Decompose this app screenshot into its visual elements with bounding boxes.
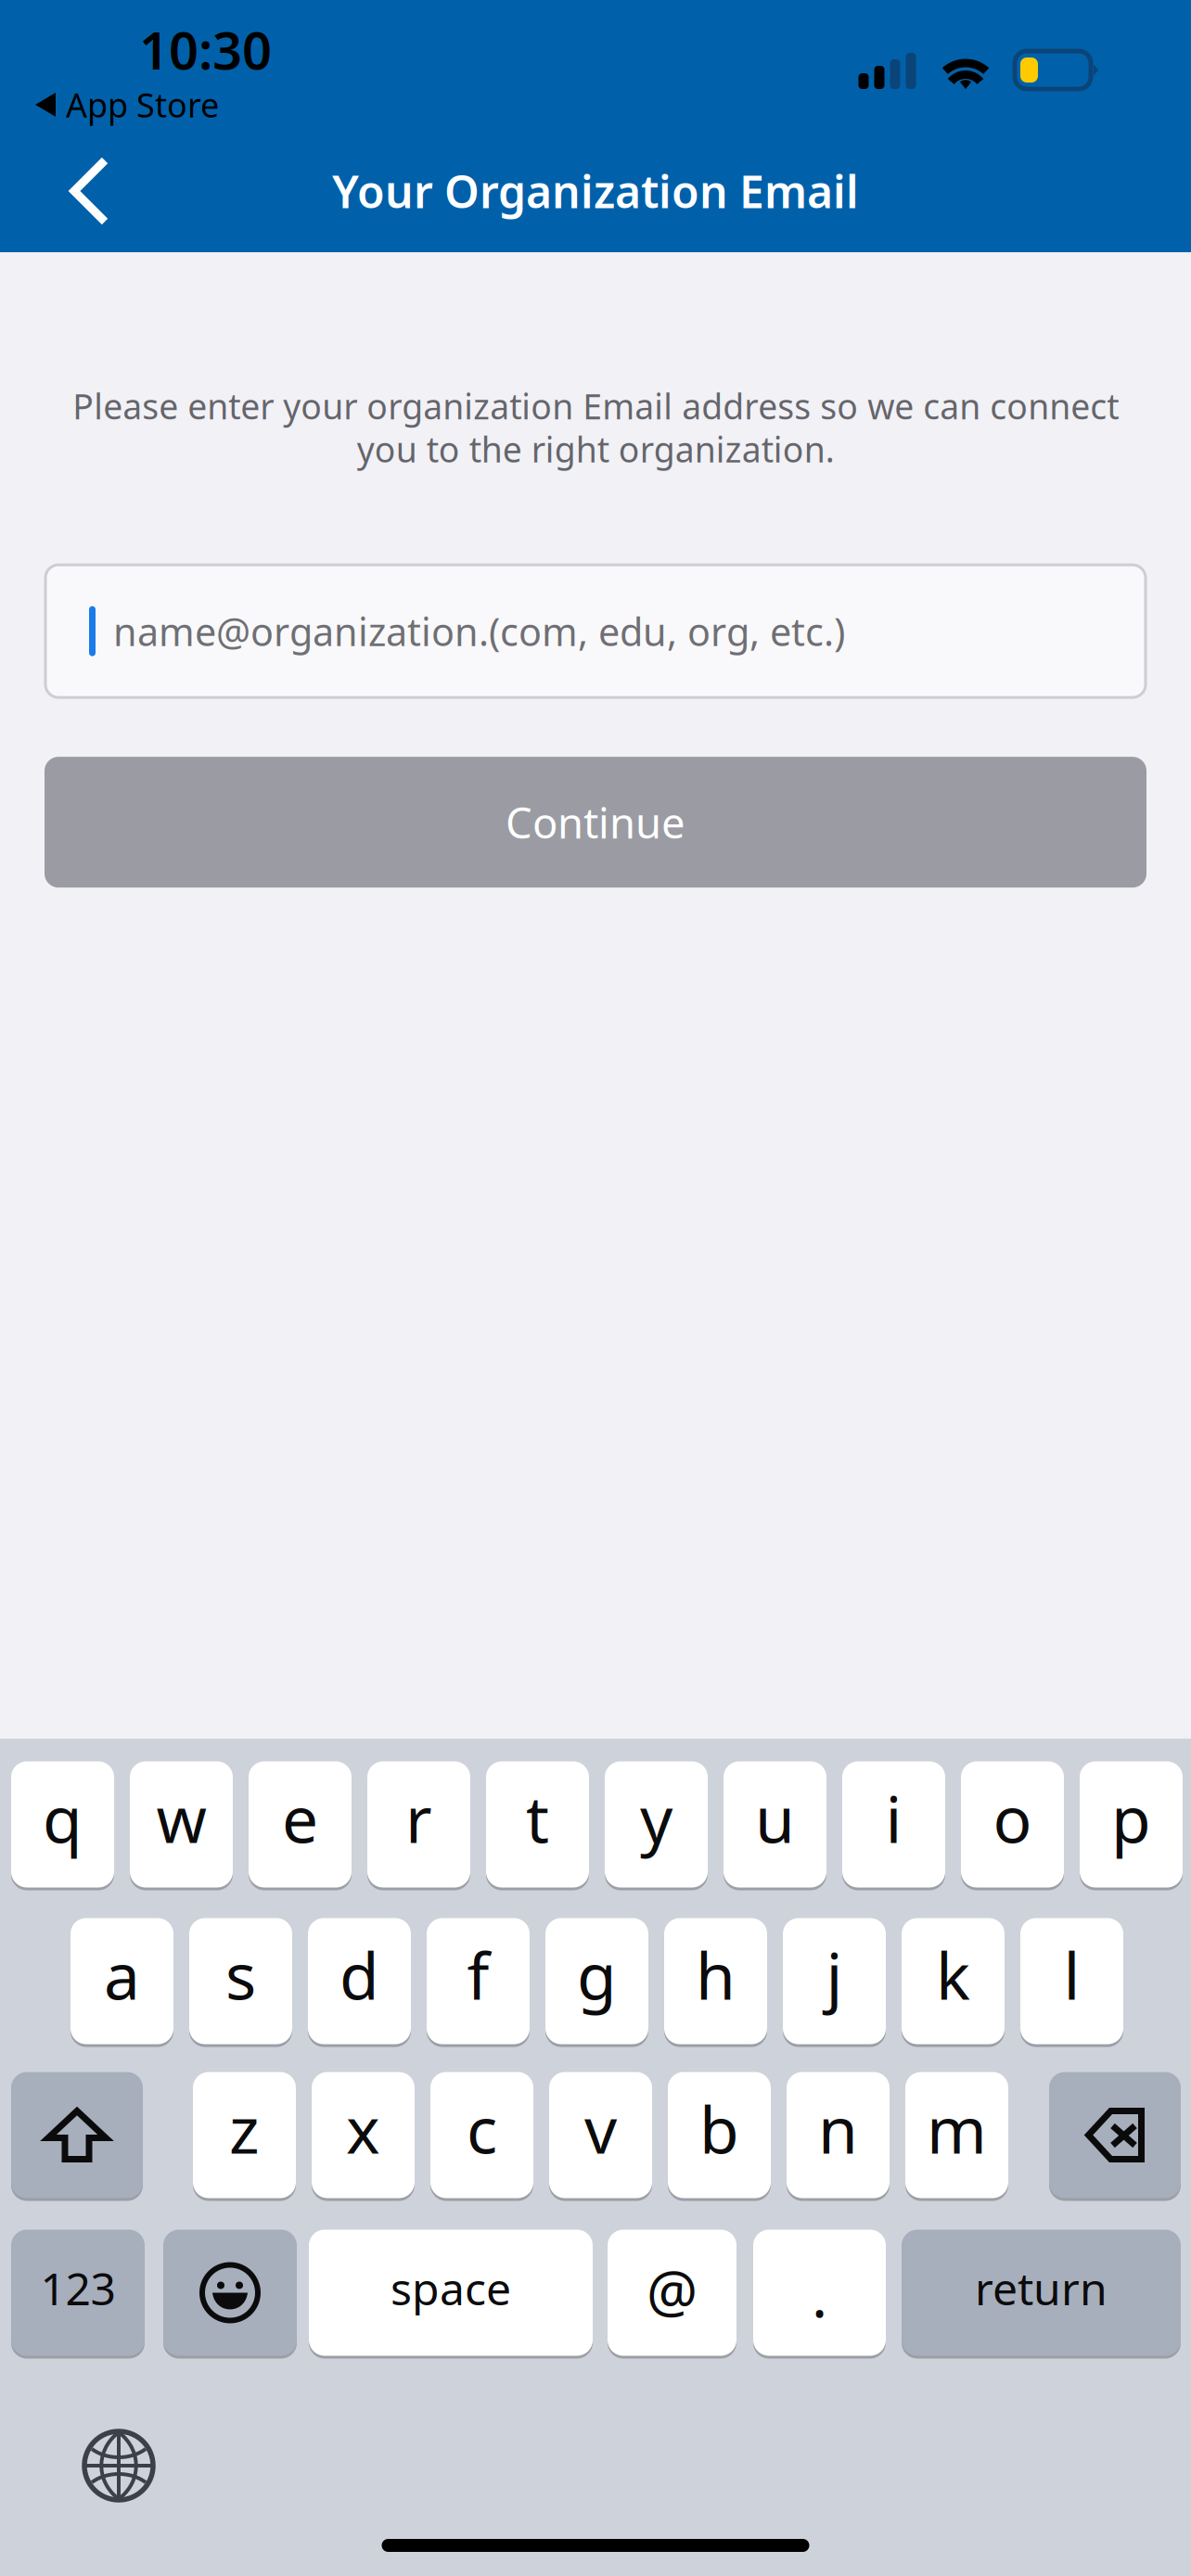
button[interactable]: at sign [608, 2228, 736, 2357]
staticText: name@organization.(com, edu, org, etc.) [113, 606, 845, 657]
staticText: x [346, 2086, 380, 2171]
button[interactable]: Shift [11, 2071, 143, 2200]
button[interactable]: i [842, 1760, 945, 1889]
staticText: l [1063, 1932, 1080, 2017]
staticText: y [640, 1775, 672, 1861]
button[interactable]: q [11, 1760, 114, 1889]
button[interactable]: f [427, 1917, 530, 2046]
staticText: b [699, 2086, 739, 2171]
button[interactable]: space [309, 2228, 593, 2357]
staticText: o [993, 1775, 1032, 1861]
button[interactable]: p [1080, 1760, 1183, 1889]
button[interactable]: Back [32, 133, 147, 249]
staticText: h [696, 1932, 736, 2017]
staticText: s [225, 1932, 256, 2017]
staticText: Continue [506, 794, 685, 850]
staticText: u [755, 1775, 795, 1861]
staticText: d [339, 1932, 379, 2017]
staticText: space [391, 2258, 511, 2318]
button[interactable]: l [1020, 1917, 1123, 2046]
staticText: 123 [40, 2258, 115, 2318]
button[interactable]: z [193, 2071, 296, 2200]
staticText: App Store [66, 83, 219, 127]
button[interactable]: period [753, 2228, 886, 2357]
button[interactable]: b [668, 2071, 771, 2200]
staticText: j [826, 1932, 843, 2017]
button[interactable]: Emoji [163, 2228, 297, 2357]
button[interactable]: y [605, 1760, 708, 1889]
button[interactable]: r [367, 1760, 470, 1889]
staticText: p [1111, 1775, 1151, 1861]
button[interactable]: Delete [1049, 2071, 1181, 2200]
button[interactable]: s [189, 1917, 292, 2046]
staticText: k [936, 1932, 970, 2017]
staticText: a [104, 1932, 140, 2017]
button[interactable]: Numbers [11, 2228, 145, 2357]
staticText: g [577, 1932, 617, 2017]
staticText: z [229, 2086, 260, 2171]
staticText: Please enter your organization Email add… [72, 383, 1119, 472]
button[interactable]: g [545, 1917, 648, 2046]
staticText: q [43, 1775, 83, 1861]
button[interactable]: c [430, 2071, 533, 2200]
button[interactable]: m [905, 2071, 1008, 2200]
staticText: t [526, 1775, 549, 1861]
button[interactable]: k [902, 1917, 1005, 2046]
staticText: 10:30 [139, 15, 272, 84]
staticText: return [975, 2258, 1108, 2318]
button[interactable]: Next keyboard [82, 2429, 156, 2503]
staticText: i [885, 1775, 902, 1861]
staticText: e [282, 1775, 318, 1861]
button[interactable]: d [308, 1917, 411, 2046]
button[interactable]: u [724, 1760, 826, 1889]
button[interactable]: n [787, 2071, 890, 2200]
staticText: . [812, 2255, 827, 2334]
button[interactable]: x [312, 2071, 415, 2200]
button[interactable]: a [70, 1917, 173, 2046]
button[interactable]: j [783, 1917, 886, 2046]
staticText: f [467, 1932, 489, 2017]
staticText: v [584, 2086, 617, 2171]
button[interactable]: h [664, 1917, 767, 2046]
staticText: m [927, 2086, 987, 2171]
button[interactable]: w [130, 1760, 233, 1889]
button[interactable]: Continue [45, 757, 1146, 888]
staticText: n [818, 2086, 858, 2171]
button[interactable]: return [902, 2228, 1181, 2357]
button[interactable]: e [249, 1760, 352, 1889]
staticText: @ [647, 2252, 698, 2328]
button[interactable]: t [486, 1760, 589, 1889]
staticText: Your Organization Email [332, 161, 859, 221]
staticText: c [467, 2086, 497, 2171]
staticText: w [156, 1775, 206, 1861]
staticText: r [405, 1775, 432, 1861]
button[interactable]: v [549, 2071, 652, 2200]
button[interactable]: o [961, 1760, 1064, 1889]
